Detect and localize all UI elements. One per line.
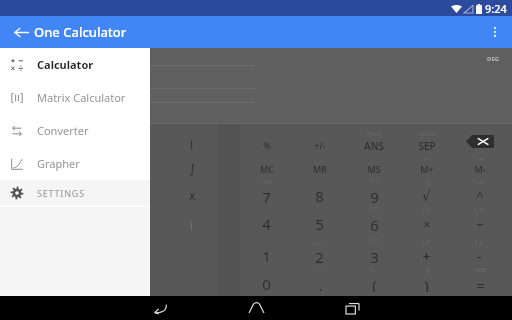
- button[interactable]: %: [240, 128, 293, 154]
- staticText: ←: [424, 155, 430, 162]
- staticText: 8: [315, 186, 324, 204]
- button[interactable]: Converter: [0, 114, 150, 147]
- staticText: ): [424, 275, 429, 292]
- staticText: %: [263, 139, 271, 151]
- staticText: 6: [370, 215, 379, 232]
- staticText: +: [422, 247, 431, 264]
- button[interactable]: ᴼᴼᴼ: [347, 238, 400, 264]
- button[interactable]: 8: [293, 178, 346, 204]
- staticText: ×: [423, 215, 431, 232]
- staticText: SETTINGS: [37, 187, 85, 199]
- button[interactable]: Grapher: [0, 147, 150, 180]
- button[interactable]: x: [175, 182, 209, 208]
- staticText: ∫: [189, 162, 196, 176]
- button[interactable]: !: [175, 132, 209, 158]
- staticText: 4: [262, 214, 271, 232]
- staticText: 1: [262, 246, 271, 264]
- button[interactable]: 0: [240, 266, 293, 292]
- button[interactable]: ∫: [175, 156, 209, 182]
- staticText: =: [476, 275, 485, 292]
- button[interactable]: SETTINGS: [0, 180, 150, 206]
- staticText: 3: [370, 247, 379, 264]
- staticText: -: [477, 247, 482, 264]
- staticText: One Calculator: [34, 23, 127, 41]
- staticText: MS: [367, 163, 381, 175]
- button[interactable]: =INT: [453, 266, 506, 292]
- staticText: √: [422, 188, 431, 204]
- button[interactable]: MR: [293, 152, 346, 178]
- staticText: 0: [262, 274, 271, 292]
- button[interactable]: ←: [400, 152, 453, 178]
- staticText: (..)×: [421, 206, 432, 214]
- staticText: PAST: [367, 130, 381, 138]
- button[interactable]: Home: [230, 296, 282, 320]
- button[interactable]: 4: [240, 206, 293, 232]
- button[interactable]: Recent apps: [326, 296, 378, 320]
- staticText: 9: [370, 187, 379, 204]
- button[interactable]: (..)+: [400, 238, 453, 264]
- staticText: .: [318, 275, 323, 292]
- button[interactable]: CLEAR: [400, 128, 453, 154]
- button[interactable]: Back: [134, 296, 186, 320]
- button[interactable]: ᴼᴼᴼ: [347, 206, 400, 232]
- staticText: (: [372, 275, 377, 292]
- button[interactable]: More options: [482, 19, 508, 45]
- staticText: Calculator: [37, 57, 94, 72]
- button[interactable]: (..: [347, 266, 400, 292]
- button[interactable]: Backspace: [453, 128, 506, 154]
- button[interactable]: +/-: [293, 128, 346, 154]
- staticText: ÷: [476, 215, 484, 232]
- button[interactable]: ..)): [400, 266, 453, 292]
- button[interactable]: 1: [240, 238, 293, 264]
- button[interactable]: ×10ˣ: [240, 178, 293, 204]
- staticText: (..)÷: [474, 206, 485, 214]
- button[interactable]: Matrix Calculator: [0, 81, 150, 114]
- button[interactable]: Back: [8, 19, 34, 45]
- staticText: i: [190, 217, 194, 233]
- button[interactable]: Calculator: [0, 48, 150, 81]
- staticText: ^: [476, 187, 484, 204]
- staticText: 5: [315, 214, 324, 232]
- staticText: ×10ˣ: [260, 178, 273, 186]
- staticText: 2: [315, 247, 324, 264]
- staticText: SEP: [418, 139, 436, 153]
- staticText: 9:24: [485, 1, 507, 16]
- staticText: MR: [313, 163, 327, 175]
- staticText: !: [190, 137, 194, 153]
- staticText: (..)+: [421, 238, 432, 246]
- staticText: M+: [420, 163, 434, 175]
- staticText: ..)): [423, 266, 430, 274]
- staticText: ⁿ√: [423, 179, 430, 187]
- button[interactable]: PAST: [347, 128, 400, 154]
- staticText: M-: [474, 163, 486, 175]
- button[interactable]: →: [453, 152, 506, 178]
- staticText: Matrix Calculator: [37, 90, 126, 105]
- button[interactable]: ..|: [293, 238, 346, 264]
- button[interactable]: MC: [240, 152, 293, 178]
- staticText: 7: [262, 187, 271, 204]
- staticText: Converter: [37, 123, 89, 138]
- button[interactable]: (..)×: [400, 206, 453, 232]
- staticText: Grapher: [37, 156, 80, 171]
- staticText: +/-: [314, 139, 326, 151]
- staticText: CLEAR: [418, 130, 436, 138]
- button[interactable]: MS: [347, 152, 400, 178]
- button[interactable]: i: [175, 212, 209, 238]
- button[interactable]: ⁿ√: [400, 178, 453, 204]
- staticText: (..)-: [475, 238, 484, 246]
- button[interactable]: ᴼᴼᴼ: [347, 178, 400, 204]
- button[interactable]: 5: [293, 206, 346, 232]
- staticText: x: [189, 187, 196, 203]
- staticText: DEG: [487, 55, 500, 63]
- staticText: ANS: [364, 139, 384, 153]
